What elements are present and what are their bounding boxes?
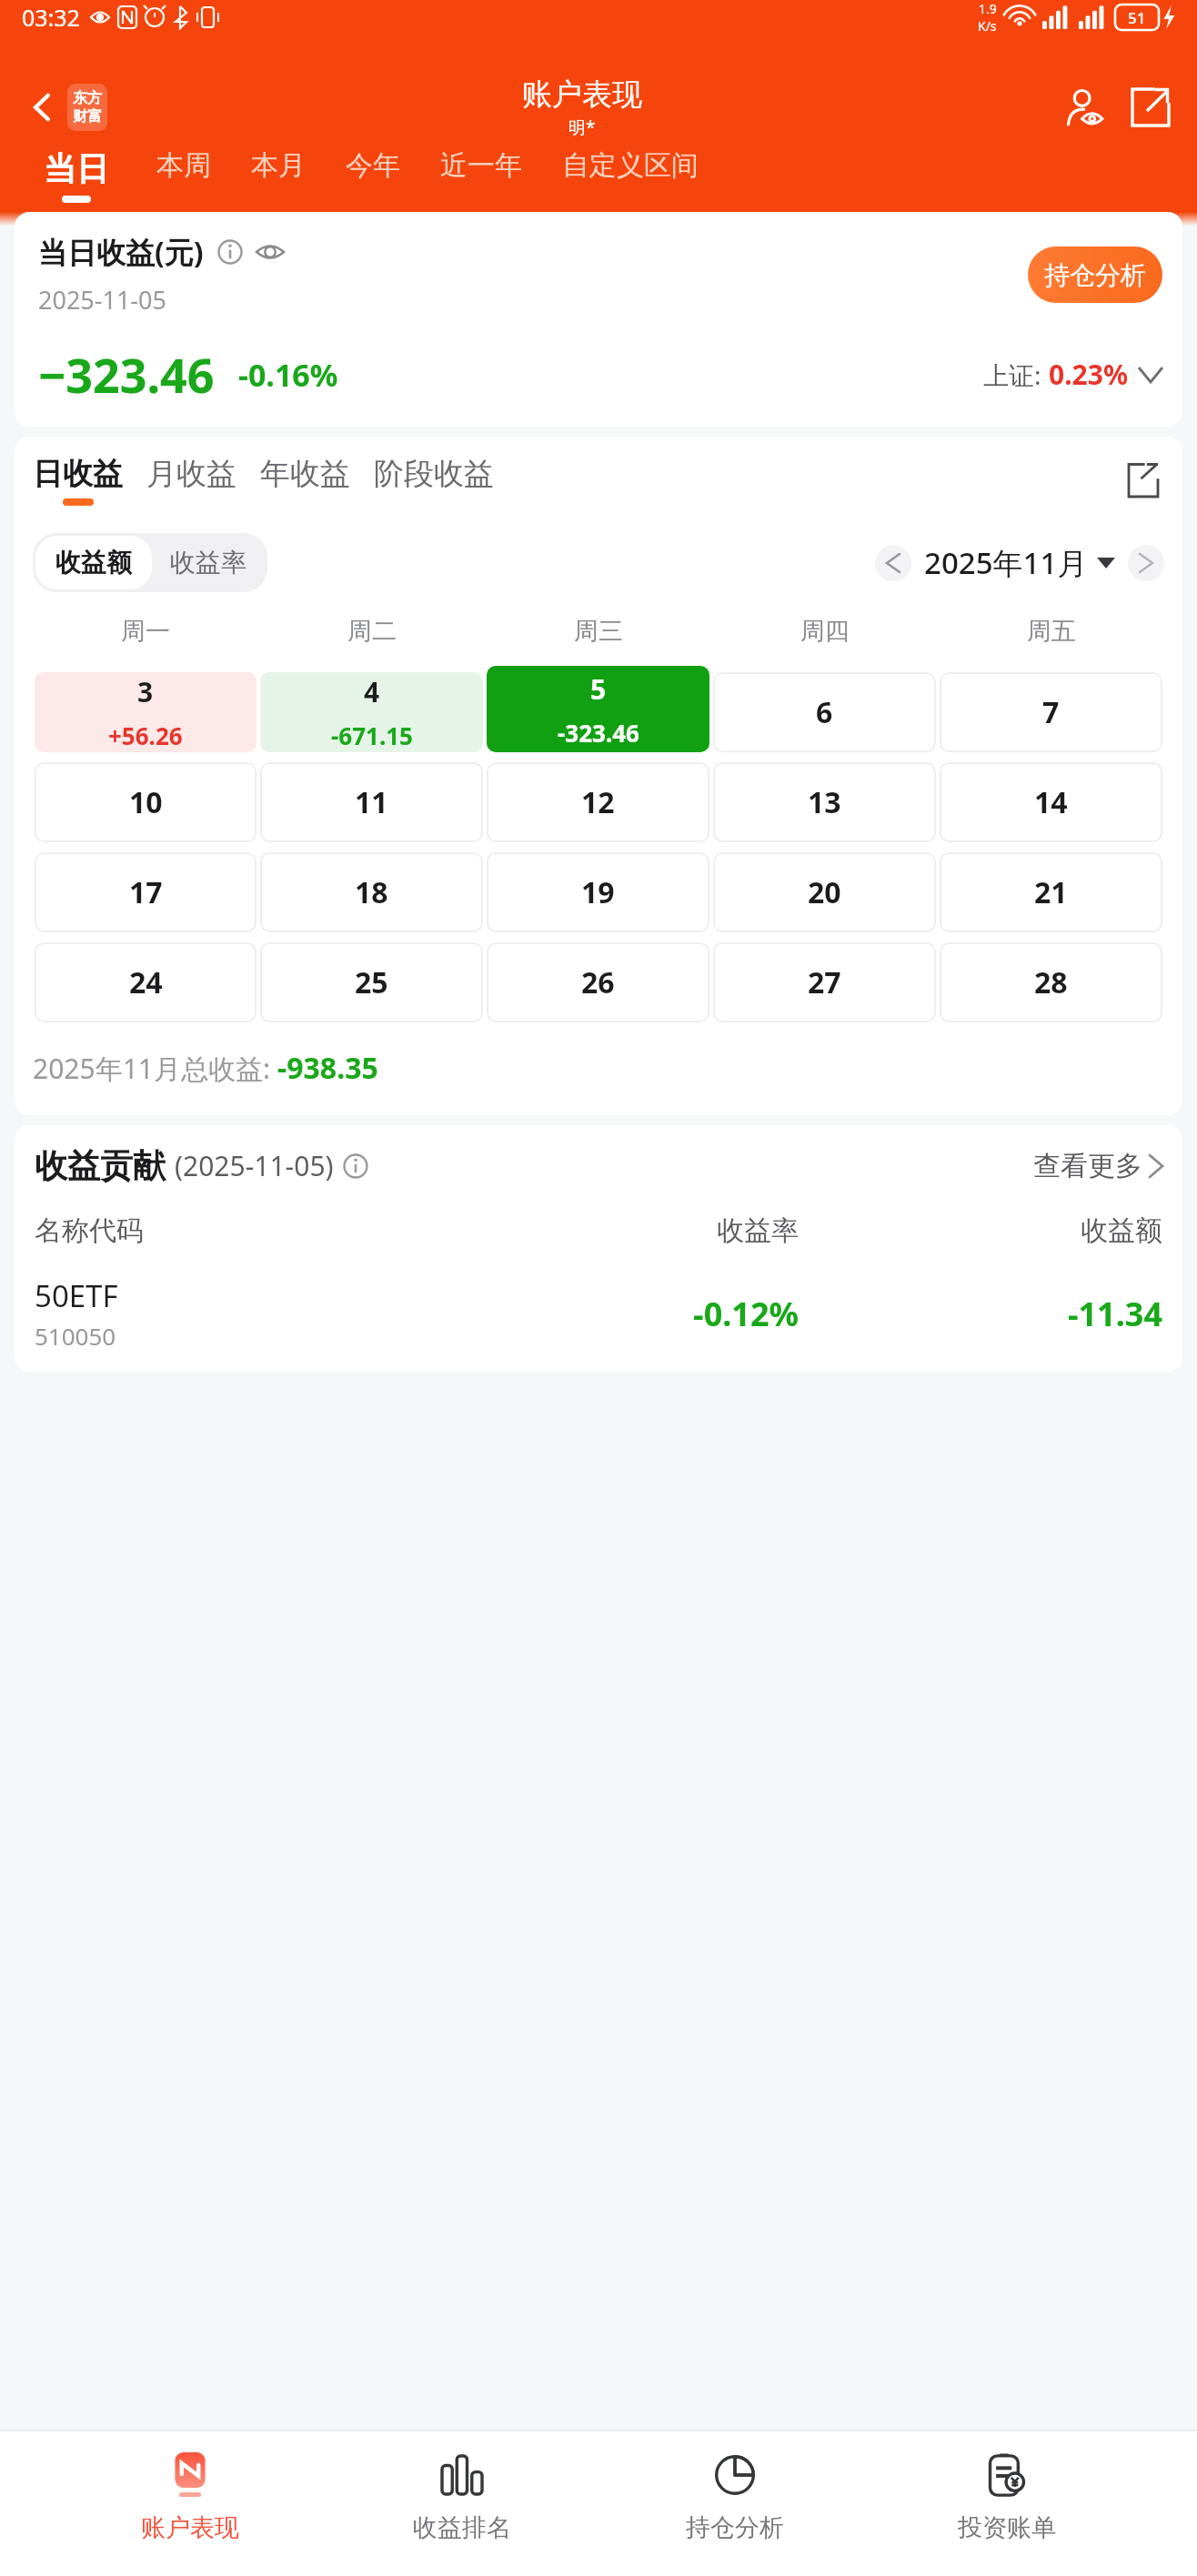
staticText: 本周: [156, 148, 211, 183]
staticText: 7: [1042, 692, 1060, 732]
button[interactable]: 28: [940, 942, 1162, 1022]
button[interactable]: 13: [713, 762, 936, 842]
staticText: 收益贡献: [35, 1145, 166, 1186]
button[interactable]: 近一年: [420, 148, 542, 196]
button[interactable]: 上证:: [983, 356, 1162, 393]
button[interactable]: 2025年11月: [924, 542, 1115, 583]
button[interactable]: 18: [260, 852, 483, 932]
button[interactable]: 当日: [44, 148, 109, 203]
staticText: 24: [129, 962, 163, 1002]
button[interactable]: 持仓分析: [1028, 247, 1162, 303]
staticText: 51: [1128, 7, 1146, 28]
staticText: -938.35: [277, 1048, 378, 1088]
button[interactable]: 阶段收益: [374, 455, 518, 506]
staticText: 周五: [1027, 616, 1076, 647]
staticText: 明*: [568, 116, 596, 139]
button[interactable]: 投资账单: [925, 2443, 1089, 2576]
staticText: 日收益: [33, 455, 123, 493]
button[interactable]: 17: [35, 852, 256, 932]
staticText: 名称代码: [35, 1213, 435, 1248]
button[interactable]: 19: [487, 852, 709, 932]
staticText: 6: [816, 692, 833, 732]
button[interactable]: 10: [35, 762, 256, 842]
staticText: 2025年11月: [924, 542, 1088, 583]
staticText: 当日: [44, 148, 109, 189]
button[interactable]: 24: [35, 942, 256, 1022]
staticText: 1.9: [979, 0, 997, 17]
button[interactable]: 26: [487, 942, 709, 1022]
button[interactable]: 20: [713, 852, 936, 932]
staticText: 账户表现: [522, 75, 642, 114]
button[interactable]: Back: [18, 83, 67, 132]
staticText: 17: [129, 872, 163, 912]
staticText: -323.46: [558, 717, 639, 749]
button[interactable]: Share: [1122, 79, 1179, 136]
button[interactable]: Account: [1057, 79, 1113, 136]
button[interactable]: 收益额: [35, 536, 152, 589]
button[interactable]: 50ETF: [35, 1275, 1162, 1352]
button[interactable]: 25: [260, 942, 483, 1022]
button[interactable]: 收益率: [152, 536, 265, 589]
button[interactable]: 查看更多: [1033, 1149, 1162, 1183]
button[interactable]: 6: [713, 672, 936, 752]
button[interactable]: 27: [713, 942, 936, 1022]
staticText: 14: [1034, 782, 1068, 822]
button[interactable]: 持仓分析: [653, 2443, 817, 2576]
button[interactable]: Next month: [1128, 545, 1164, 581]
staticText: 周一: [121, 616, 170, 647]
button[interactable]: 账户表现: [108, 2443, 272, 2576]
button[interactable]: Info: [216, 238, 244, 266]
staticText: 自定义区间: [562, 148, 699, 183]
staticText: K/s: [978, 17, 997, 35]
button[interactable]: Share: [1122, 459, 1164, 501]
button[interactable]: 3: [35, 672, 256, 752]
button[interactable]: 日收益: [33, 455, 146, 506]
button[interactable]: 自定义区间: [542, 148, 719, 196]
staticText: 月收益: [146, 455, 236, 493]
staticText: 财富: [73, 107, 102, 126]
staticText: 21: [1034, 872, 1068, 912]
button[interactable]: 收益排名: [380, 2443, 544, 2576]
button[interactable]: Previous month: [875, 545, 911, 581]
staticText: 收益额: [55, 547, 132, 579]
staticText: 10: [129, 782, 163, 822]
staticText: 2025年11月总收益:: [33, 1050, 277, 1087]
button[interactable]: 14: [940, 762, 1162, 842]
staticText: -0.16%: [238, 354, 338, 396]
staticText: 投资账单: [958, 2512, 1056, 2543]
button[interactable]: 本周: [136, 148, 231, 196]
staticText: 2025-11-05: [38, 283, 166, 317]
button[interactable]: 今年: [326, 148, 420, 196]
button[interactable]: 本月: [231, 148, 326, 196]
button[interactable]: 11: [260, 762, 483, 842]
staticText: 本月: [251, 148, 306, 183]
staticText: 当日收益(元): [38, 232, 204, 272]
staticText: 收益率: [435, 1213, 799, 1248]
staticText: 26: [581, 962, 615, 1002]
staticText: 20: [808, 872, 841, 912]
button[interactable]: 12: [487, 762, 709, 842]
button[interactable]: 5: [487, 666, 709, 752]
button[interactable]: 年收益: [260, 455, 374, 506]
button[interactable]: 7: [940, 672, 1162, 752]
staticText: −323.46: [38, 342, 215, 407]
button[interactable]: Toggle visibility: [255, 236, 286, 267]
staticText: 持仓分析: [686, 2512, 784, 2543]
staticText: 3: [137, 673, 154, 710]
staticText: 11: [355, 782, 388, 822]
staticText: 12: [581, 782, 615, 822]
button[interactable]: 21: [940, 852, 1162, 932]
staticText: 13: [808, 782, 841, 822]
button[interactable]: 月收益: [146, 455, 260, 506]
staticText: 查看更多: [1033, 1149, 1142, 1183]
button[interactable]: 东方财富: [67, 84, 107, 131]
staticText: 收益额: [799, 1213, 1162, 1248]
staticText: 5: [590, 670, 607, 708]
staticText: 年收益: [260, 455, 350, 493]
staticText: 东方: [73, 89, 102, 107]
button[interactable]: 4: [260, 672, 483, 752]
staticText: 510050: [35, 1320, 116, 1352]
staticText: 19: [581, 872, 615, 912]
staticText: 今年: [346, 148, 400, 183]
staticText: 持仓分析: [1044, 259, 1146, 291]
